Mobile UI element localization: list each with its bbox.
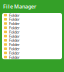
staticText: Folder bbox=[9, 29, 20, 34]
staticText: Folder bbox=[9, 42, 20, 47]
staticText: Folder bbox=[9, 25, 20, 30]
staticText: Folder bbox=[9, 12, 20, 18]
staticText: Folder bbox=[9, 46, 20, 51]
staticText: Folder bbox=[9, 17, 20, 22]
staticText: Folder bbox=[9, 50, 20, 55]
staticText: File Manager bbox=[3, 3, 36, 10]
staticText: Folder bbox=[9, 38, 20, 43]
staticText: Folder bbox=[9, 21, 20, 26]
staticText: Folder bbox=[9, 54, 20, 60]
staticText: Folder bbox=[9, 33, 20, 39]
